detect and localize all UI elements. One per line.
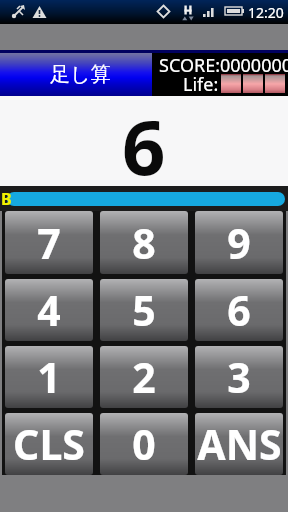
button[interactable]: 0 <box>100 413 188 475</box>
staticText: CLS <box>13 416 85 472</box>
button[interactable]: 9 <box>195 211 283 274</box>
button[interactable]: CLS <box>5 413 93 475</box>
staticText: ANS <box>197 416 282 472</box>
staticText: 8 <box>132 215 156 271</box>
staticText: 足し算 <box>50 62 111 87</box>
button[interactable]: 2 <box>100 346 188 408</box>
button[interactable]: 7 <box>5 211 93 274</box>
staticText: 9 <box>227 215 251 271</box>
staticText: SCORE:0000000 <box>159 53 288 78</box>
staticText: 6 <box>227 282 251 338</box>
staticText: 3 <box>227 349 251 405</box>
staticText: Life: <box>183 72 219 97</box>
staticText: 1 <box>37 349 61 405</box>
button[interactable]: 1 <box>5 346 93 408</box>
staticText: 2 <box>132 349 156 405</box>
staticText: 4 <box>37 282 61 338</box>
button[interactable]: 3 <box>195 346 283 408</box>
staticText: B <box>1 188 12 210</box>
button[interactable]: 足し算 <box>0 53 152 96</box>
staticText: 0 <box>132 416 156 472</box>
staticText: 12:20 <box>248 3 284 22</box>
button[interactable]: 5 <box>100 279 188 341</box>
button[interactable]: ANS <box>195 413 283 475</box>
button[interactable]: 8 <box>100 211 188 274</box>
staticText: 6 <box>122 94 166 184</box>
button[interactable]: 6 <box>195 279 283 341</box>
staticText: 7 <box>37 215 61 271</box>
staticText: 5 <box>132 282 156 338</box>
button[interactable]: 4 <box>5 279 93 341</box>
